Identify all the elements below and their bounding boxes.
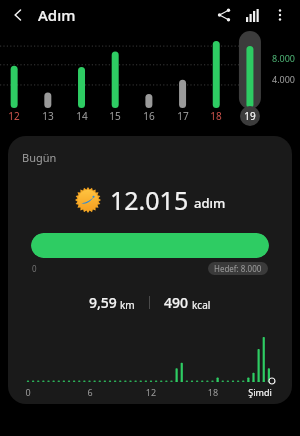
button[interactable]: Share — [210, 1, 238, 29]
staticText: 0 — [32, 263, 37, 274]
button[interactable]: 17 — [170, 106, 196, 126]
staticText: 13 — [42, 109, 54, 123]
button[interactable] — [31, 233, 269, 258]
button[interactable]: 16 — [136, 106, 162, 126]
staticText: Adım — [38, 5, 76, 25]
staticText: 16 — [143, 109, 155, 123]
button[interactable]: 19 — [237, 106, 263, 126]
staticText: 6 — [80, 386, 100, 398]
staticText: 8.000 — [272, 52, 296, 64]
button[interactable]: Back — [4, 1, 32, 29]
staticText: 9,59 — [89, 293, 117, 312]
staticText: 4.000 — [272, 73, 296, 85]
staticText: 17 — [177, 109, 189, 123]
button[interactable]: 15 — [102, 106, 128, 126]
staticText: adım — [194, 194, 226, 212]
staticText: 15 — [109, 109, 121, 123]
button[interactable]: Şimdi — [240, 386, 280, 398]
staticText: km — [120, 298, 135, 312]
staticText: 12.015 — [110, 183, 189, 217]
staticText: Hedef: 8.000 — [214, 263, 262, 274]
staticText: 18 — [203, 386, 223, 398]
staticText: Bugün — [22, 150, 57, 165]
staticText: 490 — [164, 293, 189, 312]
button[interactable]: Chart — [238, 1, 266, 29]
button[interactable]: 13 — [35, 106, 61, 126]
button[interactable]: 14 — [69, 106, 95, 126]
staticText: 19 — [244, 109, 256, 123]
button[interactable]: More options — [266, 1, 294, 29]
staticText: 0 — [18, 386, 38, 398]
staticText: 12 — [141, 386, 161, 398]
staticText: 12 — [8, 109, 20, 123]
button[interactable]: 18 — [203, 106, 229, 126]
staticText: kcal — [192, 298, 211, 312]
button[interactable]: 12 — [1, 106, 27, 126]
staticText: 14 — [76, 109, 88, 123]
staticText: 18 — [210, 109, 222, 123]
